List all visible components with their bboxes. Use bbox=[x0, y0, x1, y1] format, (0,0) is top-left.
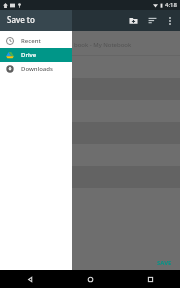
staticText: Save to bbox=[7, 14, 35, 25]
button[interactable]: More options bbox=[162, 13, 178, 29]
staticText: Drive bbox=[21, 51, 37, 59]
button[interactable]: Drive bbox=[0, 48, 72, 62]
button[interactable]: Downloads bbox=[0, 62, 72, 76]
button[interactable]: Home bbox=[60, 270, 120, 288]
staticText: 4:18 bbox=[165, 1, 177, 9]
button[interactable]: Back bbox=[0, 270, 60, 288]
button[interactable]: New folder bbox=[124, 11, 143, 30]
staticText: Downloads bbox=[21, 65, 53, 73]
button[interactable]: Recent apps bbox=[120, 270, 180, 288]
button[interactable]: Recent bbox=[0, 34, 72, 48]
staticText: SAVE bbox=[157, 259, 172, 267]
staticText: Recent bbox=[21, 37, 41, 45]
button[interactable]: Sort bbox=[143, 11, 162, 30]
button[interactable]: SAVE bbox=[154, 257, 175, 269]
staticText: book - My Notebook bbox=[74, 41, 132, 49]
